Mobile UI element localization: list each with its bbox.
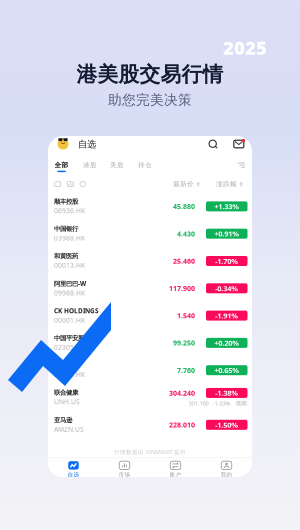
- staticText: 06936.HK: [54, 206, 85, 215]
- staticText: 7.760: [177, 365, 195, 375]
- staticText: 301.100: [188, 399, 208, 407]
- button[interactable]: 设置: [236, 161, 246, 169]
- staticText: 228.010: [169, 420, 195, 429]
- button[interactable]: 账户: [150, 457, 201, 483]
- staticText: 我的: [220, 471, 232, 478]
- staticText: 自选: [67, 471, 79, 478]
- staticText: 25.460: [173, 256, 195, 266]
- staticText: 00939.HK: [54, 370, 85, 379]
- button[interactable]: 市场: [99, 457, 150, 483]
- button[interactable]: 我的: [201, 457, 252, 483]
- button[interactable]: 联合健康: [48, 384, 252, 411]
- staticText: 最新价: [173, 180, 194, 188]
- staticText: 中国平安股: [54, 334, 84, 342]
- button[interactable]: 中国平安股: [48, 329, 252, 356]
- button[interactable]: 全部: [55, 161, 69, 172]
- staticText: CK HOLDINGS: [54, 306, 99, 315]
- staticText: 账户: [169, 471, 181, 478]
- staticText: +1.33%: [214, 201, 239, 211]
- staticText: -1.70%: [215, 256, 238, 266]
- staticText: -0.34%: [215, 283, 238, 293]
- staticText: 助您完美决策: [108, 91, 192, 109]
- staticText: 自选: [78, 138, 96, 150]
- staticText: 盘前: [236, 400, 246, 406]
- staticText: 00013.HK: [54, 261, 85, 270]
- staticText: 亚马逊: [54, 416, 72, 424]
- button[interactable]: 搜索: [206, 137, 220, 151]
- button[interactable]: 消息: [232, 138, 245, 150]
- button[interactable]: 顺丰控股: [48, 193, 252, 220]
- staticText: -1.91%: [215, 310, 238, 321]
- button[interactable]: 和黄医药: [48, 247, 252, 275]
- staticText: +0.91%: [214, 229, 239, 239]
- staticText: 45.880: [173, 202, 195, 211]
- staticText: +0.20%: [214, 338, 239, 348]
- staticText: 02305.HK: [54, 343, 85, 352]
- staticText: AMZN.US: [54, 424, 84, 434]
- staticText: 港股: [83, 161, 97, 169]
- button[interactable]: 自选: [48, 457, 99, 483]
- staticText: -1.03%: [212, 399, 230, 407]
- staticText: 99.250: [173, 338, 195, 348]
- staticText: 1.540: [177, 311, 195, 320]
- staticText: 顺丰控股: [54, 198, 78, 206]
- staticText: 09988.HK: [54, 288, 85, 297]
- button[interactable]: 亚马逊: [48, 411, 252, 438]
- button[interactable]: 持仓: [138, 161, 152, 169]
- staticText: 304.240: [169, 388, 195, 398]
- staticText: 涨跌幅: [216, 180, 237, 188]
- staticText: -1.50%: [215, 420, 238, 430]
- staticText: 港美股交易行情: [76, 62, 223, 87]
- staticText: 持仓: [138, 161, 152, 169]
- staticText: 117.900: [169, 284, 195, 293]
- staticText: UNH.US: [54, 397, 80, 406]
- staticText: 阿里巴巴-W: [54, 279, 86, 288]
- staticText: 联合健康: [54, 389, 78, 397]
- staticText: 美股: [110, 161, 124, 169]
- button[interactable]: 港股: [83, 161, 97, 169]
- staticText: 03988.HK: [54, 233, 85, 242]
- staticText: 2025: [223, 35, 267, 60]
- staticText: 和黄医药: [54, 252, 78, 260]
- staticText: +0.65%: [214, 365, 239, 375]
- staticText: 4.430: [177, 229, 195, 238]
- button[interactable]: 建设银行: [48, 357, 252, 384]
- staticText: 全部: [55, 161, 69, 169]
- staticText: 中国银行: [54, 225, 78, 233]
- button[interactable]: 中国银行: [48, 220, 252, 247]
- staticText: 行情数据由 FINSMART 提供: [114, 448, 186, 456]
- button[interactable]: 美股: [110, 161, 124, 169]
- button[interactable]: 阿里巴巴-W: [48, 275, 252, 302]
- staticText: -1.38%: [215, 388, 238, 398]
- staticText: 00001.HK: [54, 316, 85, 325]
- button[interactable]: CK HOLDINGS: [48, 302, 252, 329]
- staticText: 市场: [118, 471, 130, 478]
